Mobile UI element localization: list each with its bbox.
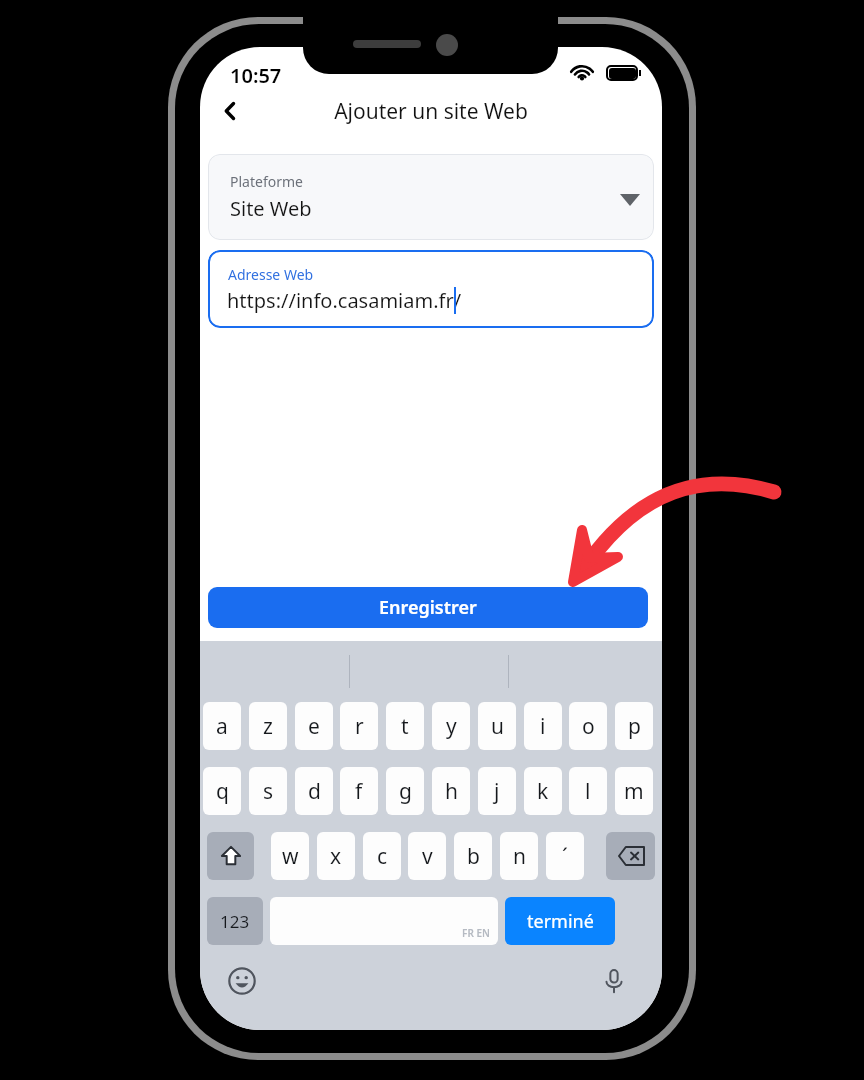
staticText: u bbox=[491, 712, 504, 741]
staticText: terminé bbox=[527, 909, 594, 934]
staticText: y bbox=[446, 712, 457, 741]
staticText: b bbox=[467, 842, 480, 871]
staticText: f bbox=[355, 777, 363, 806]
staticText: a bbox=[216, 712, 228, 741]
button[interactable]: Plateforme bbox=[208, 154, 654, 240]
staticText: k bbox=[537, 777, 549, 806]
staticText: g bbox=[399, 777, 412, 806]
button[interactable]: Adresse Web bbox=[208, 250, 654, 328]
staticText: t bbox=[401, 712, 409, 741]
staticText: Ajouter un site Web bbox=[200, 97, 662, 131]
button[interactable]: 123 bbox=[207, 897, 263, 945]
button[interactable]: z bbox=[249, 702, 287, 750]
button[interactable]: b bbox=[454, 832, 492, 880]
button[interactable]: Dictée bbox=[592, 959, 636, 1003]
staticText: p bbox=[628, 712, 641, 741]
button[interactable]: m bbox=[615, 767, 653, 815]
button[interactable]: t bbox=[386, 702, 424, 750]
button[interactable]: h bbox=[432, 767, 470, 815]
staticText: 10:57 bbox=[230, 62, 282, 89]
button[interactable]: d bbox=[295, 767, 333, 815]
button[interactable]: Emoji bbox=[220, 959, 264, 1003]
staticText: h bbox=[445, 777, 458, 806]
button[interactable]: Retour bbox=[208, 89, 252, 133]
staticText: FR EN bbox=[462, 926, 490, 940]
button[interactable]: c bbox=[363, 832, 401, 880]
button[interactable]: terminé bbox=[505, 897, 615, 945]
button[interactable]: Enregistrer bbox=[208, 587, 648, 628]
button[interactable]: u bbox=[478, 702, 516, 750]
button[interactable]: Effacer bbox=[606, 832, 655, 880]
button[interactable]: x bbox=[317, 832, 355, 880]
staticText: l bbox=[585, 777, 591, 806]
staticText: q bbox=[216, 777, 229, 806]
button[interactable]: q bbox=[203, 767, 241, 815]
staticText: Enregistrer bbox=[379, 595, 477, 620]
button[interactable]: k bbox=[524, 767, 562, 815]
staticText: 123 bbox=[220, 910, 250, 933]
button[interactable]: Majuscule bbox=[207, 832, 254, 880]
staticText: o bbox=[582, 712, 595, 741]
button[interactable]: r bbox=[340, 702, 378, 750]
button[interactable]: j bbox=[478, 767, 516, 815]
button[interactable]: s bbox=[249, 767, 287, 815]
button[interactable]: i bbox=[524, 702, 562, 750]
staticText: Plateforme bbox=[230, 172, 303, 191]
button[interactable]: e bbox=[295, 702, 333, 750]
staticText: Adresse Web bbox=[228, 265, 314, 284]
button[interactable]: a bbox=[203, 702, 241, 750]
staticText: c bbox=[377, 842, 388, 871]
staticText: j bbox=[494, 777, 500, 806]
staticText: x bbox=[330, 842, 342, 871]
button[interactable]: ´ bbox=[546, 832, 584, 880]
button[interactable]: f bbox=[340, 767, 378, 815]
button[interactable]: y bbox=[432, 702, 470, 750]
staticText: v bbox=[422, 842, 433, 871]
button[interactable]: n bbox=[500, 832, 538, 880]
staticText: Site Web bbox=[230, 195, 312, 222]
staticText: i bbox=[540, 712, 546, 741]
staticText: https://info.casamiam.fr/ bbox=[227, 287, 462, 314]
staticText: z bbox=[263, 712, 273, 741]
staticText: s bbox=[263, 777, 274, 806]
staticText: d bbox=[308, 777, 321, 806]
staticText: n bbox=[513, 842, 526, 871]
button[interactable]: w bbox=[271, 832, 309, 880]
button[interactable]: g bbox=[386, 767, 424, 815]
button[interactable]: o bbox=[569, 702, 607, 750]
button[interactable]: l bbox=[569, 767, 607, 815]
button[interactable]: v bbox=[408, 832, 446, 880]
button[interactable]: p bbox=[615, 702, 653, 750]
staticText: w bbox=[282, 842, 299, 871]
staticText: ´ bbox=[562, 842, 568, 871]
staticText: m bbox=[624, 777, 644, 806]
button[interactable]: Espace bbox=[270, 897, 498, 945]
staticText: e bbox=[308, 712, 320, 741]
staticText: r bbox=[355, 712, 364, 741]
